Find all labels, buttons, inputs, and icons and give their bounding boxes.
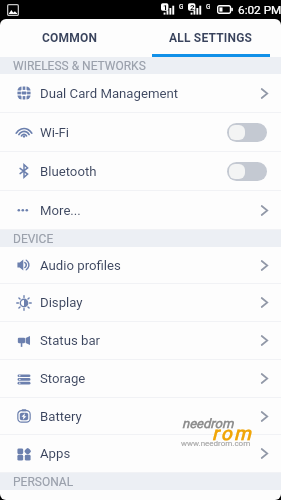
staticText: Bluetooth xyxy=(40,164,97,179)
staticText: PERSONAL xyxy=(13,475,74,489)
staticText: Dual Card Management xyxy=(40,86,179,101)
staticText: needrom xyxy=(182,416,234,431)
staticText: Display xyxy=(40,295,83,310)
staticText: Storage xyxy=(40,371,86,386)
staticText: COMMON xyxy=(42,31,98,45)
staticText: WIRELESS & NETWORKS xyxy=(13,59,146,73)
staticText: 6:02 PM xyxy=(238,3,281,17)
button[interactable]: Dual Card Management xyxy=(0,74,281,112)
button[interactable]: Display xyxy=(0,284,281,321)
button[interactable]: Wi-Fi xyxy=(0,113,281,151)
staticText: Wi-Fi xyxy=(40,125,70,140)
button[interactable]: Toggle Bluetooth xyxy=(227,162,267,181)
button[interactable]: Toggle Wi-Fi xyxy=(227,123,267,142)
staticText: Status bar xyxy=(40,333,101,348)
staticText: G xyxy=(179,3,184,11)
staticText: DEVICE xyxy=(13,232,54,246)
button[interactable]: More... xyxy=(0,191,281,229)
staticText: www.needrom.com xyxy=(181,439,251,448)
button[interactable]: Status bar xyxy=(0,322,281,359)
staticText: Apps xyxy=(40,446,71,461)
button[interactable]: ALL SETTINGS xyxy=(140,19,281,57)
button[interactable]: Apps xyxy=(0,435,281,472)
button[interactable]: Audio profiles xyxy=(0,247,281,283)
staticText: rom xyxy=(212,422,254,444)
button[interactable]: Storage xyxy=(0,360,281,397)
button[interactable]: Bluetooth xyxy=(0,152,281,190)
staticText: Audio profiles xyxy=(40,258,121,273)
staticText: ALL SETTINGS xyxy=(169,31,253,45)
staticText: Battery xyxy=(40,409,82,424)
staticText: More... xyxy=(40,203,81,218)
staticText: 2 xyxy=(190,3,195,12)
staticText: 1 xyxy=(163,3,168,12)
staticText: G xyxy=(206,3,211,11)
button[interactable]: Battery xyxy=(0,398,281,434)
button[interactable]: COMMON xyxy=(0,19,140,57)
